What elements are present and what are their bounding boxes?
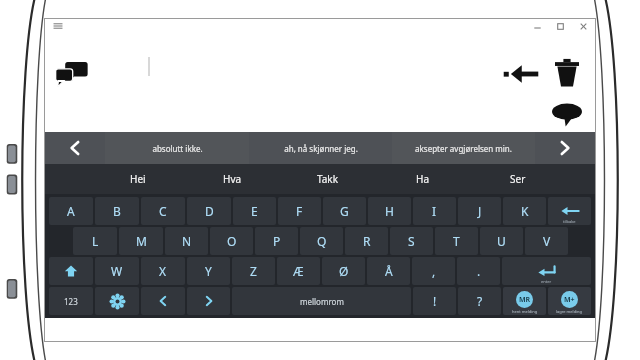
staticText: A <box>67 203 75 219</box>
staticText: F <box>296 203 303 219</box>
staticText: V <box>543 233 551 249</box>
button[interactable]: mr <box>503 287 546 315</box>
staticText: H <box>385 203 394 219</box>
button[interactable]: J <box>458 197 501 225</box>
button[interactable]: G <box>323 197 366 225</box>
staticText: S <box>408 233 415 249</box>
button[interactable]: C <box>141 197 185 225</box>
staticText: hent melding <box>512 309 538 314</box>
staticText: K <box>521 203 529 219</box>
button[interactable]: aksepter avgjørelsen min. <box>392 132 535 164</box>
button[interactable]: ah, nå skjønner jeg. <box>249 132 392 164</box>
staticText: tilbake <box>563 219 576 224</box>
button[interactable]: S <box>390 227 433 255</box>
button[interactable]: I <box>413 197 456 225</box>
staticText: M <box>136 233 147 249</box>
staticText: P <box>273 233 281 249</box>
button[interactable]: F <box>278 197 321 225</box>
staticText: . <box>477 263 481 279</box>
button[interactable]: Q <box>300 227 343 255</box>
button[interactable]: max <box>555 21 566 32</box>
button[interactable]: A <box>49 197 93 225</box>
button[interactable]: Æ <box>277 257 320 285</box>
staticText: Å <box>385 263 393 279</box>
button[interactable]: W <box>95 257 139 285</box>
button[interactable]: Å <box>367 257 410 285</box>
staticText: T <box>453 233 460 249</box>
button[interactable]: R <box>345 227 388 255</box>
button[interactable]: ? <box>458 287 501 315</box>
button[interactable]: min <box>532 21 543 32</box>
button[interactable]: L <box>73 227 117 255</box>
button[interactable]: D <box>187 197 231 225</box>
button[interactable]: Messages <box>55 61 89 87</box>
staticText: ? <box>477 293 483 309</box>
staticText: Z <box>250 263 257 279</box>
button[interactable]: O <box>210 227 253 255</box>
button[interactable]: K <box>503 197 546 225</box>
button[interactable]: Z <box>232 257 275 285</box>
staticText: R <box>363 233 371 249</box>
staticText: E <box>251 203 258 219</box>
button[interactable]: Takk <box>280 164 375 194</box>
button[interactable]: , <box>412 257 455 285</box>
button[interactable]: enter <box>502 257 591 285</box>
staticText: MR <box>519 295 531 305</box>
staticText: 123 <box>64 296 78 307</box>
button[interactable]: Ser <box>470 164 565 194</box>
button[interactable]: left <box>141 287 185 315</box>
button[interactable]: Hva <box>185 164 280 194</box>
button[interactable]: M <box>119 227 163 255</box>
button[interactable]: V <box>525 227 568 255</box>
staticText: Takk <box>317 172 339 186</box>
button[interactable]: mplus <box>548 287 591 315</box>
staticText: W <box>111 263 123 279</box>
staticText: Ha <box>416 172 430 186</box>
staticText: Æ <box>293 263 304 279</box>
staticText: U <box>497 233 506 249</box>
button[interactable]: Ha <box>375 164 470 194</box>
button[interactable]: Backspace <box>503 63 539 85</box>
button[interactable]: H <box>368 197 411 225</box>
staticText: lagre melding <box>556 309 583 314</box>
staticText: aksepter avgjørelsen min. <box>415 143 512 154</box>
button[interactable]: gear <box>95 287 139 315</box>
staticText: J <box>478 203 482 219</box>
button[interactable]: mellomrom <box>232 287 411 315</box>
button[interactable]: Menu <box>51 19 65 33</box>
staticText: N <box>182 233 192 249</box>
button[interactable]: B <box>95 197 139 225</box>
button[interactable]: Ø <box>322 257 365 285</box>
staticText: ! <box>433 293 437 309</box>
button[interactable]: 123 <box>49 287 93 315</box>
button[interactable]: absolutt ikke. <box>105 132 249 164</box>
button[interactable]: P <box>255 227 298 255</box>
button[interactable]: close <box>578 21 589 32</box>
button[interactable]: ! <box>413 287 456 315</box>
staticText: O <box>227 233 237 249</box>
button[interactable]: U <box>480 227 523 255</box>
button[interactable]: T <box>435 227 478 255</box>
staticText: L <box>92 233 99 249</box>
staticText: Ø <box>339 263 349 279</box>
button[interactable]: Next <box>535 132 595 164</box>
button[interactable]: E <box>233 197 276 225</box>
button[interactable]: . <box>457 257 500 285</box>
staticText: , <box>432 263 436 279</box>
button[interactable]: N <box>165 227 208 255</box>
button[interactable]: shift <box>49 257 93 285</box>
staticText: I <box>432 203 437 219</box>
staticText: C <box>159 203 167 219</box>
staticText: absolutt ikke. <box>152 143 203 154</box>
staticText: M+ <box>564 295 575 305</box>
button[interactable]: backspace <box>548 197 591 225</box>
button[interactable]: X <box>141 257 185 285</box>
button[interactable]: Speak <box>550 101 584 127</box>
button[interactable]: Hei <box>91 164 185 194</box>
button[interactable]: Delete <box>552 57 582 89</box>
button[interactable]: Previous <box>45 132 105 164</box>
staticText: G <box>340 203 349 219</box>
staticText: B <box>113 203 121 219</box>
button[interactable]: right <box>187 287 230 315</box>
button[interactable]: Y <box>187 257 230 285</box>
